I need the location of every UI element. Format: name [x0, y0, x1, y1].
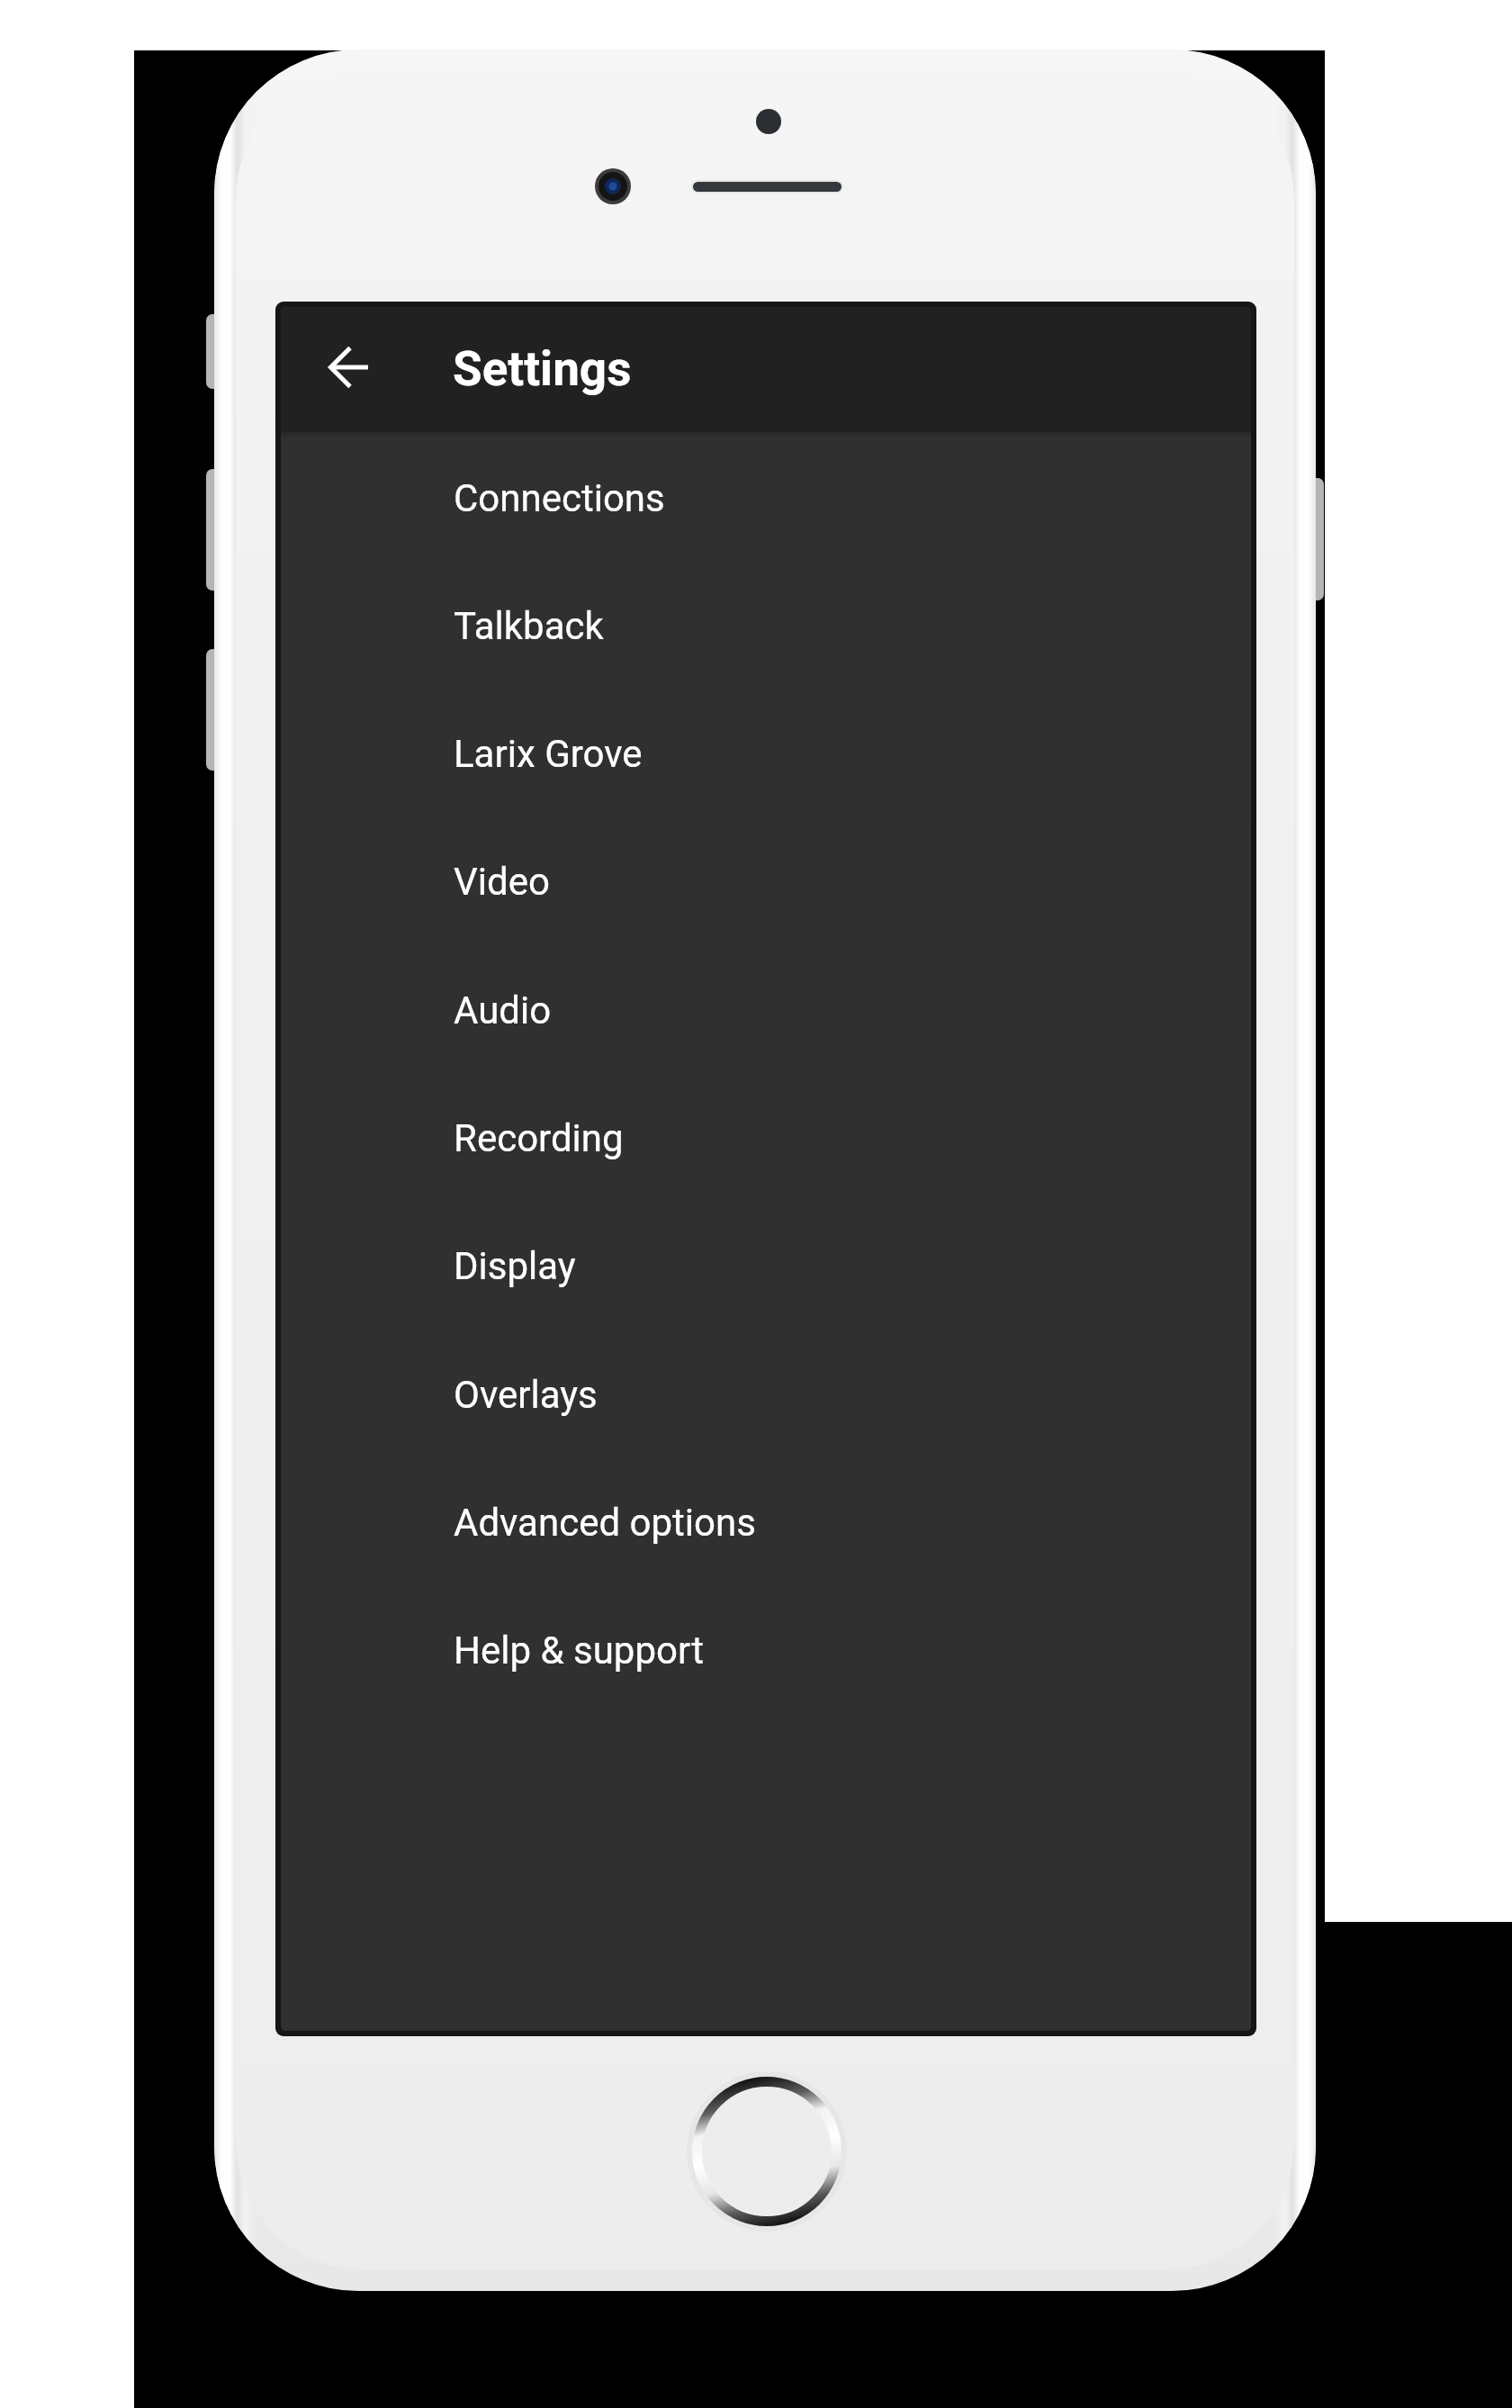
staticText: Video — [454, 860, 550, 904]
button[interactable]: Talkback — [281, 562, 1251, 690]
staticText: Connections — [454, 476, 665, 520]
button[interactable]: Overlays — [281, 1330, 1251, 1458]
staticText: Audio — [454, 988, 552, 1033]
button[interactable]: Audio — [281, 946, 1251, 1074]
staticText: Larix Grove — [454, 732, 643, 776]
button[interactable]: Advanced options — [281, 1458, 1251, 1586]
staticText: Advanced options — [454, 1501, 756, 1545]
button[interactable]: Display — [281, 1202, 1251, 1330]
staticText: Display — [454, 1244, 576, 1288]
staticText: Recording — [454, 1116, 624, 1160]
staticText: Help & support — [454, 1628, 704, 1673]
button[interactable]: Connections — [281, 434, 1251, 562]
button[interactable]: Larix Grove — [281, 690, 1251, 817]
button[interactable]: Recording — [281, 1074, 1251, 1202]
staticText: Overlays — [454, 1373, 598, 1417]
button[interactable]: Help & support — [281, 1586, 1251, 1714]
staticText: Settings — [453, 341, 632, 397]
staticText: Talkback — [454, 604, 604, 648]
button[interactable]: Video — [281, 817, 1251, 945]
button[interactable]: Back — [294, 313, 401, 420]
